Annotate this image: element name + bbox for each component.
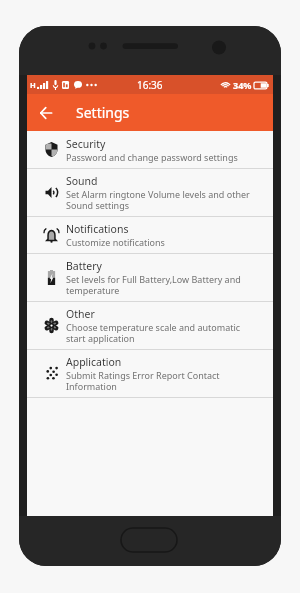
staticText: Other (66, 307, 95, 321)
staticText: Customize notifications (66, 236, 165, 248)
staticText: Security (66, 137, 106, 151)
staticText: 34% (233, 79, 252, 91)
staticText: 16:36 (137, 78, 163, 92)
staticText: Submit Ratings Error Report Contact Info… (66, 369, 252, 392)
staticText: Application (66, 355, 122, 369)
staticText: H (30, 80, 36, 90)
button[interactable]: Application (27, 350, 273, 397)
staticText: Set Alarm ringtone Volume levels and oth… (66, 188, 252, 211)
staticText: Sound (66, 174, 98, 188)
button[interactable]: Battery (27, 254, 273, 301)
button[interactable]: Back (34, 101, 58, 125)
staticText: Choose temperature scale and automatic s… (66, 321, 252, 344)
staticText: Battery (66, 259, 102, 273)
button[interactable]: Other (27, 302, 273, 349)
button[interactable]: Security (27, 131, 273, 168)
staticText: Settings (76, 103, 130, 122)
button[interactable]: Notifications (27, 217, 273, 253)
staticText: Notifications (66, 222, 129, 236)
button[interactable]: Sound (27, 169, 273, 216)
staticText: Set levels for Full Battery,Low Battery … (66, 273, 252, 296)
staticText: Password and change password settings (66, 151, 238, 163)
